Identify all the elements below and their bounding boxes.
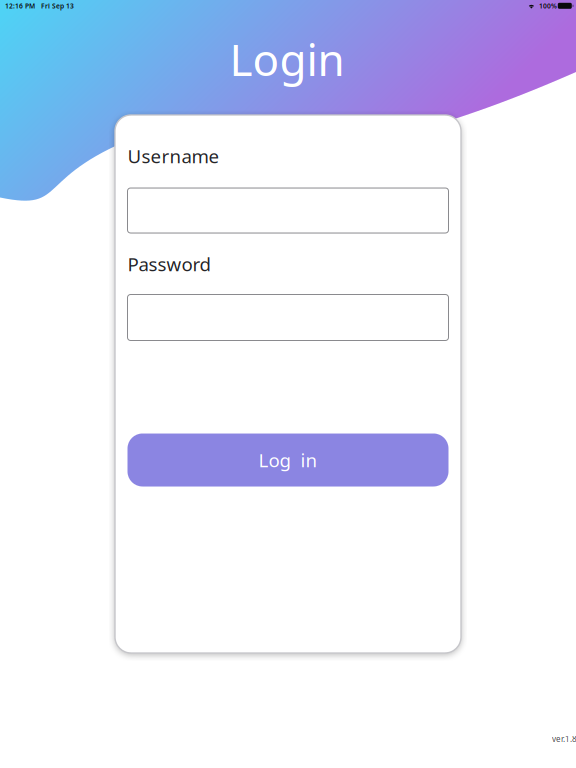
staticText: ver.1.8 xyxy=(552,734,576,744)
staticText: Login xyxy=(229,30,344,88)
staticText: 100% xyxy=(539,1,557,10)
staticText: Username xyxy=(127,144,219,168)
staticText: 12:16 PM Fri Sep 13 xyxy=(5,2,74,10)
staticText: Log in xyxy=(258,448,317,472)
button[interactable]: Log in xyxy=(127,433,448,486)
staticText: Password xyxy=(127,252,210,276)
